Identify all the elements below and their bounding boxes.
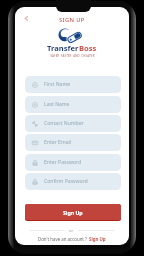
button[interactable]: Confirm Password bbox=[25, 173, 121, 190]
staticText: First Name bbox=[44, 81, 71, 88]
staticText: Contact Number bbox=[44, 120, 84, 127]
button[interactable]: First Name bbox=[25, 76, 121, 93]
staticText: Enter Email bbox=[44, 139, 72, 146]
staticText: SAFER FASTER AND CHEAPER bbox=[50, 54, 95, 58]
button[interactable]: Contact Number bbox=[25, 115, 121, 132]
button[interactable]: Sign Up bbox=[25, 204, 121, 221]
staticText: Sign Up bbox=[63, 209, 83, 216]
staticText: Don't have an account ? bbox=[38, 236, 89, 242]
button[interactable]: Last Name bbox=[25, 96, 121, 113]
button[interactable]: Sign Up bbox=[89, 236, 106, 242]
staticText: Enter Password bbox=[44, 159, 82, 166]
staticText: Sign Up bbox=[89, 236, 106, 242]
button[interactable]: Enter Email bbox=[25, 134, 121, 151]
staticText: Last Name bbox=[44, 101, 70, 108]
button[interactable]: Back bbox=[21, 13, 32, 24]
staticText: Confirm Password bbox=[44, 178, 88, 185]
staticText: Transfer bbox=[47, 43, 79, 53]
staticText: SIGN UP bbox=[59, 16, 85, 24]
staticText: or bbox=[69, 228, 74, 233]
staticText: Boss bbox=[79, 43, 97, 53]
button[interactable]: Enter Password bbox=[25, 154, 121, 171]
